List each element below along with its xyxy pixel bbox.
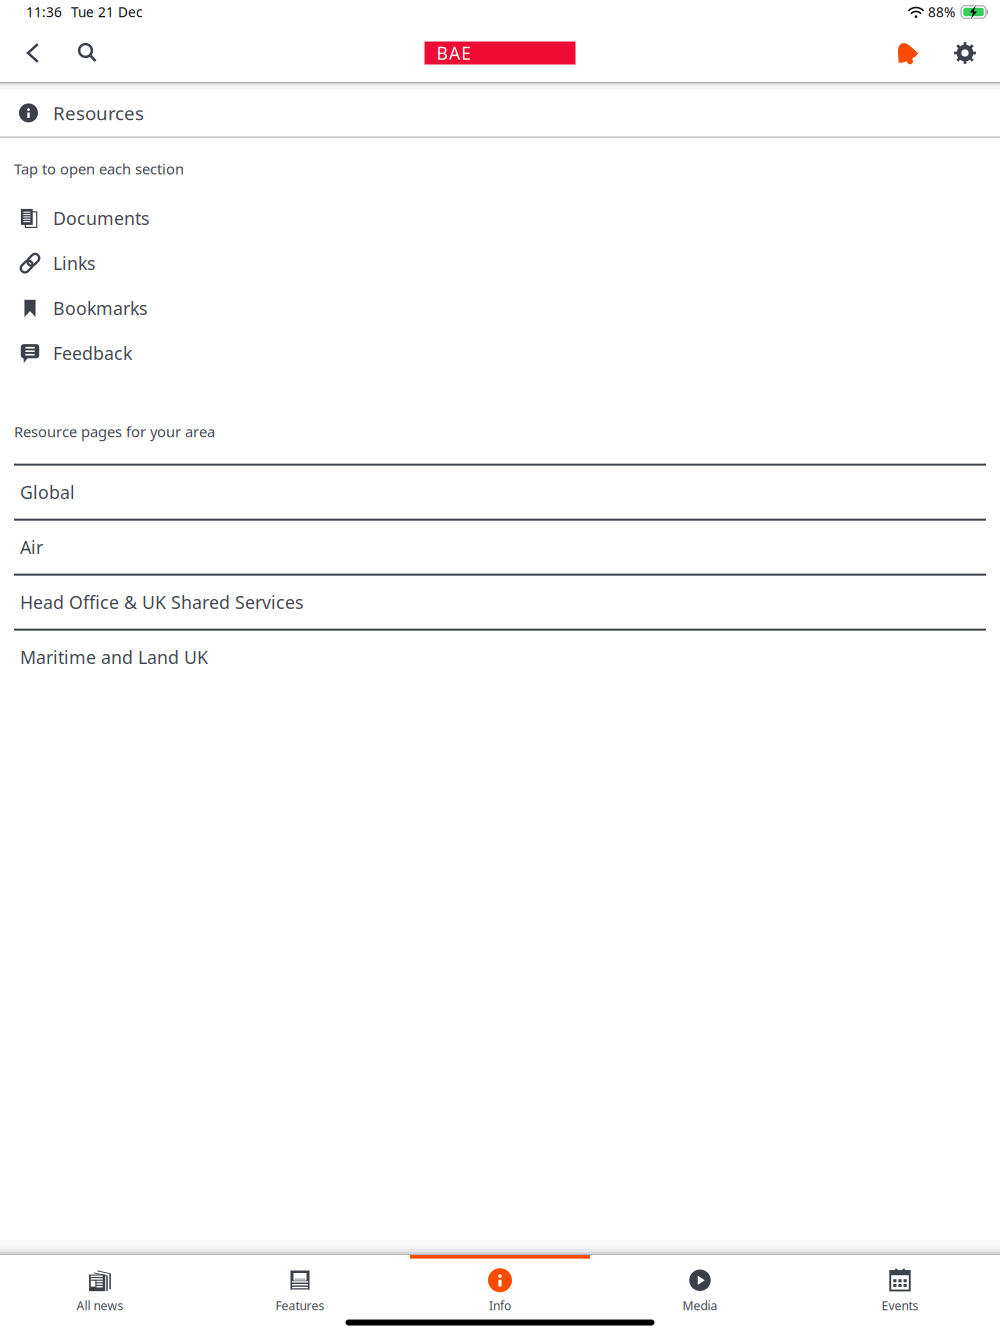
- button[interactable]: Head Office & UK Shared Services: [0, 574, 1000, 629]
- staticText: BAE SYSTEMS: [436, 41, 563, 65]
- staticText: Feedback: [53, 341, 132, 365]
- staticText: All news: [76, 1297, 123, 1314]
- staticText: Documents: [53, 206, 149, 230]
- staticText: Air: [20, 535, 43, 559]
- button[interactable]: Links: [0, 241, 1000, 286]
- button[interactable]: Features: [200, 1255, 400, 1312]
- button[interactable]: Search: [63, 27, 111, 79]
- staticText: Tap to open each section: [14, 159, 184, 179]
- button[interactable]: Bookmarks: [0, 286, 1000, 331]
- staticText: 88%: [928, 3, 955, 21]
- staticText: 11:36: [26, 3, 62, 21]
- button[interactable]: Notifications: [882, 27, 930, 79]
- staticText: Tue 21 Dec: [71, 3, 143, 21]
- button[interactable]: Events: [800, 1255, 1000, 1312]
- button[interactable]: Media: [600, 1255, 800, 1312]
- staticText: Events: [881, 1297, 918, 1314]
- button[interactable]: Documents: [0, 196, 1000, 241]
- button[interactable]: Air: [0, 519, 1000, 574]
- button[interactable]: Settings: [941, 27, 989, 79]
- staticText: Maritime and Land UK: [20, 645, 208, 669]
- button[interactable]: Back: [9, 27, 57, 79]
- button[interactable]: Info: [400, 1255, 600, 1312]
- staticText: Media: [682, 1297, 717, 1314]
- staticText: Bookmarks: [53, 296, 147, 320]
- staticText: Resources: [53, 100, 144, 126]
- button[interactable]: All news: [0, 1255, 200, 1312]
- staticText: Resource pages for your area: [14, 422, 215, 442]
- staticText: Global: [20, 480, 75, 504]
- button[interactable]: Feedback: [0, 331, 1000, 376]
- staticText: Features: [275, 1297, 324, 1314]
- button[interactable]: Maritime and Land UK: [0, 629, 1000, 684]
- button[interactable]: BAE Systems: [424, 41, 575, 64]
- staticText: Head Office & UK Shared Services: [20, 590, 303, 614]
- button[interactable]: Global: [0, 464, 1000, 519]
- staticText: Info: [489, 1297, 511, 1314]
- staticText: Links: [53, 251, 95, 275]
